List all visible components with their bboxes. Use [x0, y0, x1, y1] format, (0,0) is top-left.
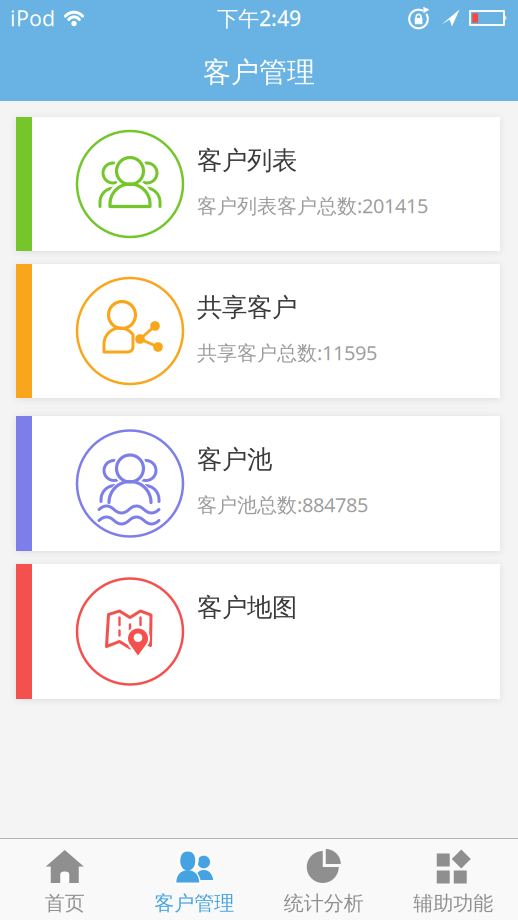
button[interactable]: 客户管理: [129, 839, 259, 920]
staticText: 辅助功能: [413, 891, 493, 916]
staticText: 共享客户: [197, 292, 297, 323]
button[interactable]: 辅助功能: [388, 839, 518, 920]
staticText: 客户地图: [197, 592, 297, 623]
staticText: 客户池: [197, 444, 272, 475]
button[interactable]: 客户池: [16, 416, 500, 551]
staticText: iPod: [10, 4, 55, 32]
staticText: 客户管理: [154, 891, 234, 916]
staticText: 首页: [45, 891, 85, 916]
button[interactable]: 统计分析: [259, 839, 388, 920]
button[interactable]: 客户列表: [16, 117, 500, 251]
button[interactable]: 共享客户: [16, 264, 500, 398]
button[interactable]: 首页: [0, 839, 129, 920]
staticText: 统计分析: [284, 891, 364, 916]
button[interactable]: 客户地图: [16, 564, 500, 699]
staticText: 共享客户总数:11595: [197, 339, 377, 366]
staticText: 下午2:49: [217, 4, 301, 32]
staticText: 客户列表: [197, 145, 297, 176]
staticText: 客户池总数:884785: [197, 491, 368, 518]
staticText: 客户列表客户总数:201415: [197, 192, 428, 219]
staticText: 客户管理: [203, 55, 315, 90]
